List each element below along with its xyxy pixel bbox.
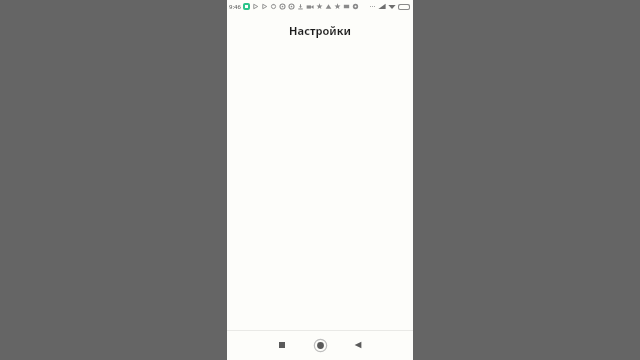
staticText: 9:46 [229,3,241,11]
button[interactable]: Back [347,334,369,356]
button[interactable]: Recent apps [271,334,293,356]
staticText: Настройки [289,23,351,38]
button[interactable]: Home [309,334,331,356]
